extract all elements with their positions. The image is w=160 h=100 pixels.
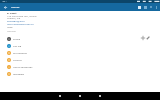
staticText: Set ringtone [13,51,27,54]
staticText: B. Sagat [7,11,17,14]
button[interactable]: Edit [145,35,151,41]
staticText: Call log [13,44,22,47]
staticText: 146 Sunnyvale Terr, Spring [7,14,37,17]
staticText: Add note [7,30,16,33]
staticText: Oregon, OR [7,16,21,19]
button[interactable]: Add to favourites [0,63,160,70]
staticText: Notes [7,26,13,29]
button[interactable]: Add [140,35,146,41]
staticText: bobsagat@w.co [7,19,25,22]
button[interactable]: Back [50,92,70,100]
button[interactable]: Recent apps [90,92,110,100]
staticText: Contact [11,6,20,9]
button[interactable]: Messages [0,70,160,77]
button[interactable]: Set ringtone [0,49,160,56]
button[interactable]: Home [70,92,90,100]
staticText: Phone [13,37,21,40]
button[interactable]: Contact [0,56,160,63]
button[interactable]: More options [154,3,159,11]
staticText: Messages [13,72,25,75]
button[interactable]: Favourite [136,3,142,11]
staticText: http://bobsagat.com/co [7,22,34,25]
staticText: Add to favourites [13,65,33,68]
button[interactable]: Navigate up [1,3,10,11]
button[interactable]: Phone [0,35,160,42]
staticText: Contact [13,58,22,61]
button[interactable]: Share [142,3,148,11]
button[interactable]: Delete [148,3,154,11]
button[interactable]: Call log [0,42,160,49]
